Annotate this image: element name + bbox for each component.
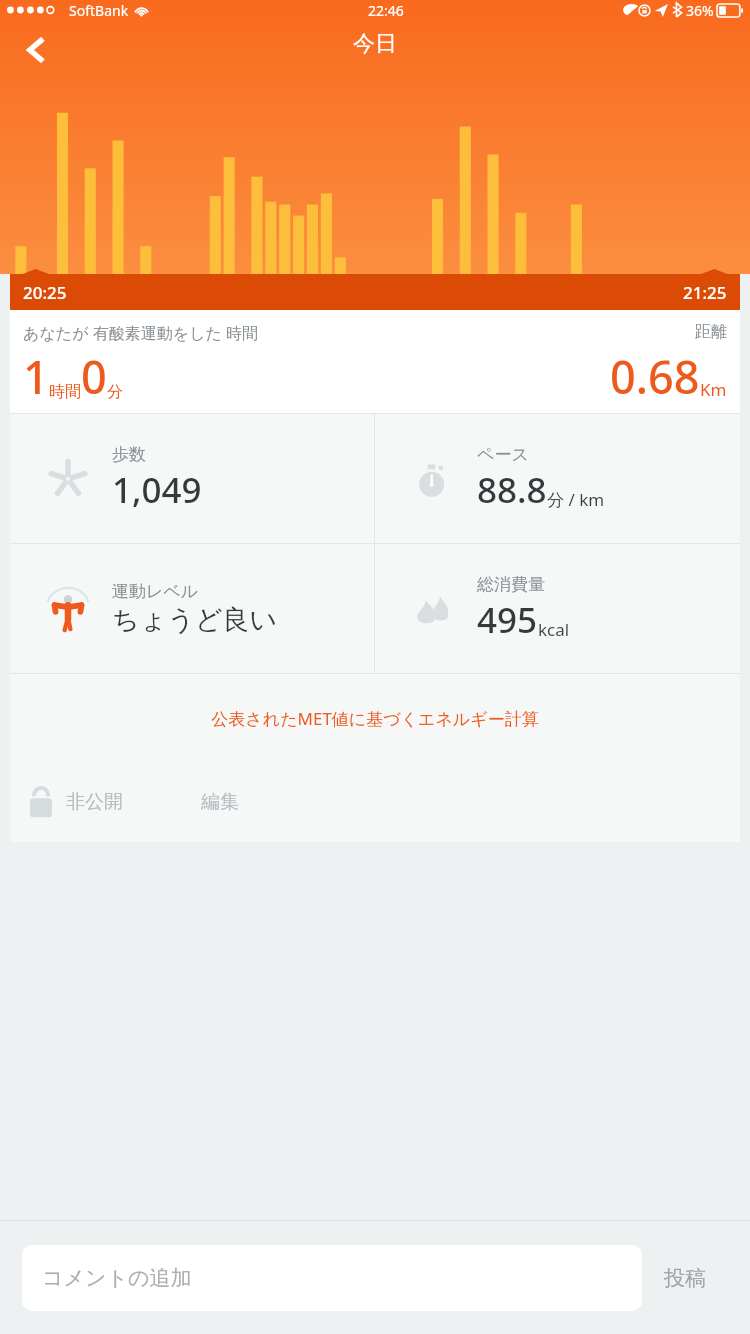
staticText: あなたが 有酸素運動をした 時間 <box>23 322 258 344</box>
staticText: ちょうど良い <box>112 603 278 637</box>
staticText: 今日 <box>353 30 397 58</box>
staticText: 歩数 <box>112 444 146 465</box>
button[interactable]: 非公開 <box>28 786 123 818</box>
staticText: SoftBank <box>69 1 129 20</box>
button[interactable]: コメントの追加 <box>22 1245 642 1311</box>
staticText: 0.68 <box>610 346 700 407</box>
button[interactable]: 編集 <box>201 790 239 814</box>
staticText: 0 <box>81 346 107 407</box>
staticText: コメントの追加 <box>42 1265 192 1291</box>
button[interactable]: 公表されたMET値に基づくエネルギー計算 <box>10 674 740 762</box>
staticText: 21:25 <box>683 281 727 304</box>
staticText: 運動レベル <box>112 581 199 602</box>
staticText: 分 / km <box>547 488 605 511</box>
staticText: 距離 <box>695 322 727 342</box>
staticText: 22:46 <box>368 1 404 20</box>
staticText: ペース <box>477 444 529 465</box>
staticText: 非公開 <box>66 790 123 814</box>
staticText: 公表されたMET値に基づくエネルギー計算 <box>211 707 539 730</box>
staticText: 総消費量 <box>477 574 545 595</box>
button[interactable]: 総消費量 <box>375 544 740 673</box>
staticText: 36% <box>686 1 714 20</box>
button[interactable]: ペース <box>375 414 740 543</box>
staticText: 88.8 <box>477 466 547 514</box>
staticText: 1 <box>23 346 49 407</box>
staticText: kcal <box>538 618 570 641</box>
button[interactable]: 投稿 <box>642 1265 728 1291</box>
staticText: 編集 <box>201 790 239 814</box>
staticText: Km <box>700 378 727 401</box>
staticText: 1,049 <box>112 466 202 514</box>
button[interactable]: 運動レベル <box>10 544 374 673</box>
staticText: 投稿 <box>664 1265 706 1291</box>
button[interactable]: Back <box>8 22 64 78</box>
staticText: 分 <box>107 382 123 402</box>
staticText: 495 <box>477 596 538 644</box>
button[interactable]: 歩数 <box>10 414 374 543</box>
staticText: 時間 <box>49 382 81 402</box>
staticText: 20:25 <box>23 281 67 304</box>
